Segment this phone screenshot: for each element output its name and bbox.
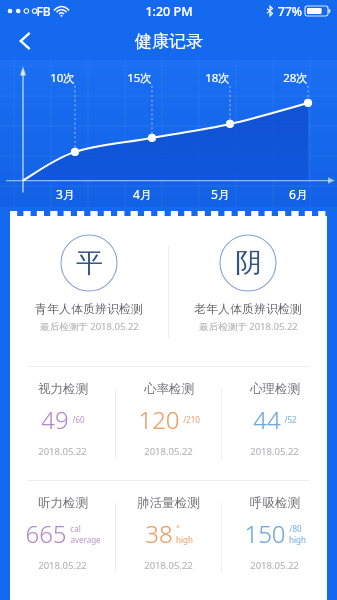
staticText: FB (36, 3, 51, 19)
staticText: 38 (145, 517, 173, 550)
button[interactable]: 心率检测 (116, 367, 221, 458)
staticText: /80 (289, 523, 302, 534)
button[interactable]: 平 (10, 228, 168, 333)
staticText: 2018.05.22 (250, 445, 299, 458)
staticText: /210 (183, 414, 200, 425)
staticText: cal (70, 523, 81, 534)
staticText: 5月 (211, 186, 230, 202)
staticText: high (289, 534, 306, 545)
button[interactable]: 呼吸检测 (222, 481, 327, 572)
staticText: 77% (278, 3, 302, 19)
staticText: 120 (138, 403, 180, 436)
staticText: 2018.05.22 (144, 559, 193, 572)
staticText: 最后检测于 2018.05.22 (199, 320, 298, 333)
staticText: /52 (284, 414, 297, 425)
staticText: 最后检测于 2018.05.22 (40, 320, 139, 333)
staticText: 呼吸检测 (250, 495, 300, 511)
staticText: 2018.05.22 (38, 445, 87, 458)
staticText: 阴 (235, 246, 262, 280)
staticText: 1:20 PM (145, 3, 193, 20)
staticText: /60 (72, 414, 85, 425)
staticText: 665 (25, 517, 67, 550)
staticText: 6月 (289, 186, 308, 202)
staticText: 28次 (283, 70, 308, 86)
staticText: 肺活量检测 (137, 495, 200, 511)
staticText: 视力检测 (38, 381, 88, 397)
staticText: 3月 (56, 186, 75, 202)
staticText: 49 (41, 403, 69, 436)
staticText: 2018.05.22 (250, 559, 299, 572)
staticText: 青年人体质辨识检测 (35, 301, 143, 316)
button[interactable]: Back (8, 24, 42, 58)
button[interactable]: 心理检测 (222, 367, 327, 458)
staticText: average (70, 534, 101, 545)
staticText: 2018.05.22 (38, 559, 87, 572)
button[interactable]: 视力检测 (10, 367, 115, 458)
staticText: 15次 (127, 70, 152, 86)
staticText: 心理检测 (250, 381, 300, 397)
staticText: ° (176, 523, 180, 534)
button[interactable]: 阴 (169, 228, 327, 333)
staticText: high (176, 534, 193, 545)
staticText: 150 (244, 517, 286, 550)
staticText: 平 (76, 246, 103, 280)
staticText: 听力检测 (38, 495, 88, 511)
staticText: 10次 (50, 70, 75, 86)
staticText: 44 (253, 403, 281, 436)
staticText: 2018.05.22 (144, 445, 193, 458)
button[interactable]: 肺活量检测 (116, 481, 221, 572)
staticText: 18次 (205, 70, 230, 86)
staticText: 老年人体质辨识检测 (194, 301, 302, 316)
staticText: 4月 (133, 186, 152, 202)
staticText: 健康记录 (135, 31, 203, 52)
button[interactable]: 听力检测 (10, 481, 115, 572)
staticText: 心率检测 (144, 381, 194, 397)
